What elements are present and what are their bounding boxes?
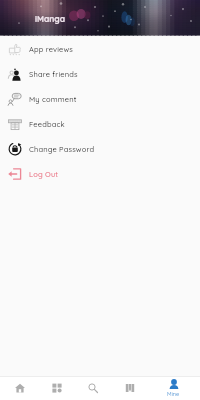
staticText: App reviews xyxy=(29,44,74,53)
staticText: Log Out xyxy=(29,169,59,178)
button[interactable]: Mine xyxy=(155,376,191,400)
button[interactable]: Home xyxy=(2,376,38,400)
button[interactable]: Share friends xyxy=(0,61,200,86)
button[interactable]: Feedback xyxy=(0,111,200,136)
button[interactable]: Bookshelf xyxy=(112,376,148,400)
button[interactable]: My comment xyxy=(0,86,200,111)
button[interactable]: Change Password xyxy=(0,136,200,161)
staticText: My comment xyxy=(29,94,77,103)
staticText: Mine xyxy=(167,390,180,397)
button[interactable]: App reviews xyxy=(0,36,200,61)
staticText: iManga xyxy=(35,13,66,24)
button[interactable]: Search xyxy=(75,376,111,400)
staticText: Feedback xyxy=(29,119,65,128)
button[interactable]: Category xyxy=(39,376,75,400)
staticText: Change Password xyxy=(29,144,95,153)
button[interactable]: Log Out xyxy=(0,161,200,186)
staticText: Share friends xyxy=(29,69,78,78)
